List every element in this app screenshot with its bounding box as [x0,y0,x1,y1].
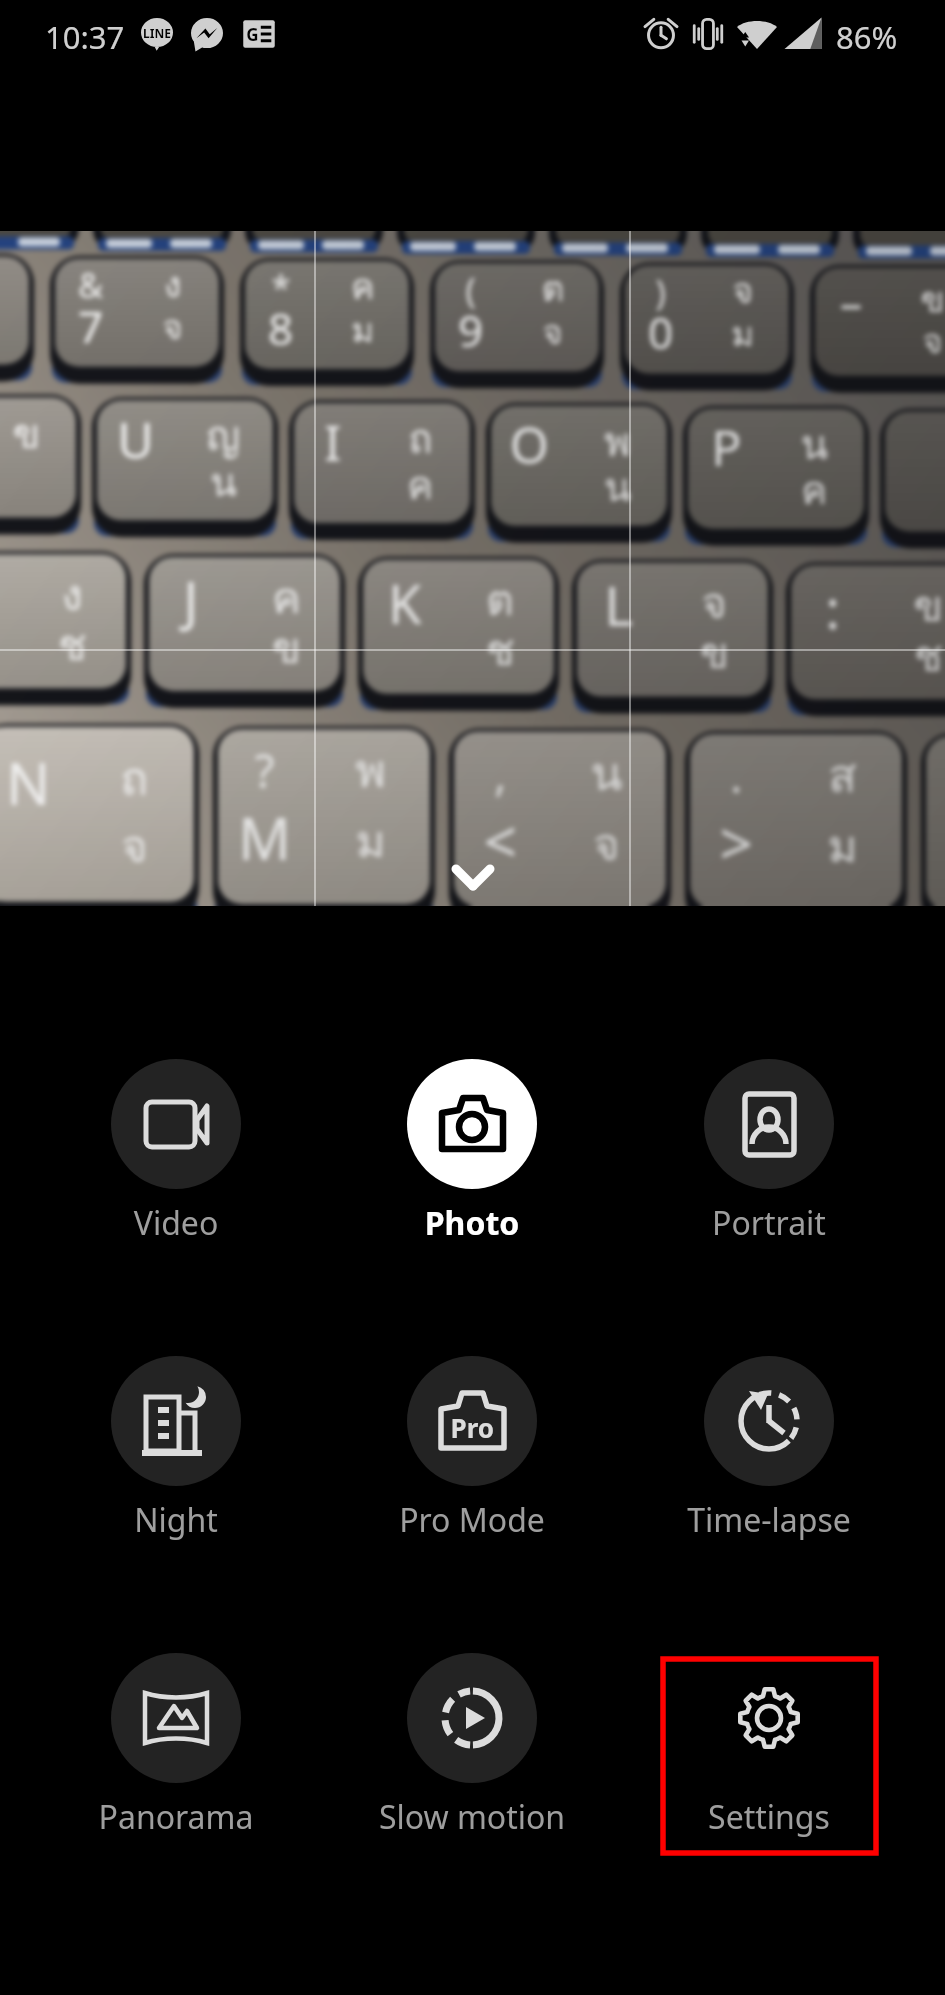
button[interactable]: Slow motion mode [362,1653,582,1854]
staticText: Settings [659,1795,879,1839]
staticText: Time-lapse [659,1498,879,1542]
staticText: Panorama [66,1795,286,1839]
staticText: Video [66,1201,286,1245]
button[interactable]: Time-lapse mode [659,1356,879,1557]
button[interactable]: Video mode [66,1059,286,1260]
button[interactable]: Panorama mode [66,1653,286,1854]
button[interactable]: Photo mode [362,1059,582,1260]
staticText: Slow motion [362,1795,582,1839]
staticText: Photo [362,1201,582,1245]
button[interactable]: Settings [659,1653,879,1854]
button[interactable]: Collapse camera modes [428,833,518,906]
staticText: Night [66,1498,286,1542]
staticText: Portrait [659,1201,879,1245]
button[interactable]: Portrait mode [659,1059,879,1260]
button[interactable]: Pro mode [362,1356,582,1557]
button[interactable]: Night mode [66,1356,286,1557]
staticText: Pro Mode [362,1498,582,1542]
